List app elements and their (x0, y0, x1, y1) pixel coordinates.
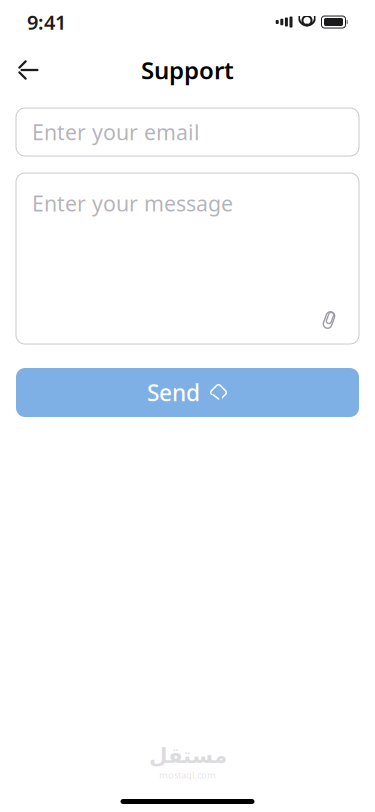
button[interactable]: Enter your email (16, 108, 359, 156)
staticText: Enter your email (32, 118, 200, 146)
staticText: Enter your message (32, 189, 233, 217)
button[interactable]: Send (16, 368, 359, 417)
button[interactable]: Back (6, 48, 50, 92)
staticText: Support (141, 54, 234, 86)
staticText: 9:41 (27, 9, 66, 35)
staticText: مستقل (148, 743, 226, 768)
staticText: Send (147, 377, 200, 407)
staticText: mostaql.com (159, 769, 216, 781)
button[interactable]: Attach file (315, 306, 343, 334)
